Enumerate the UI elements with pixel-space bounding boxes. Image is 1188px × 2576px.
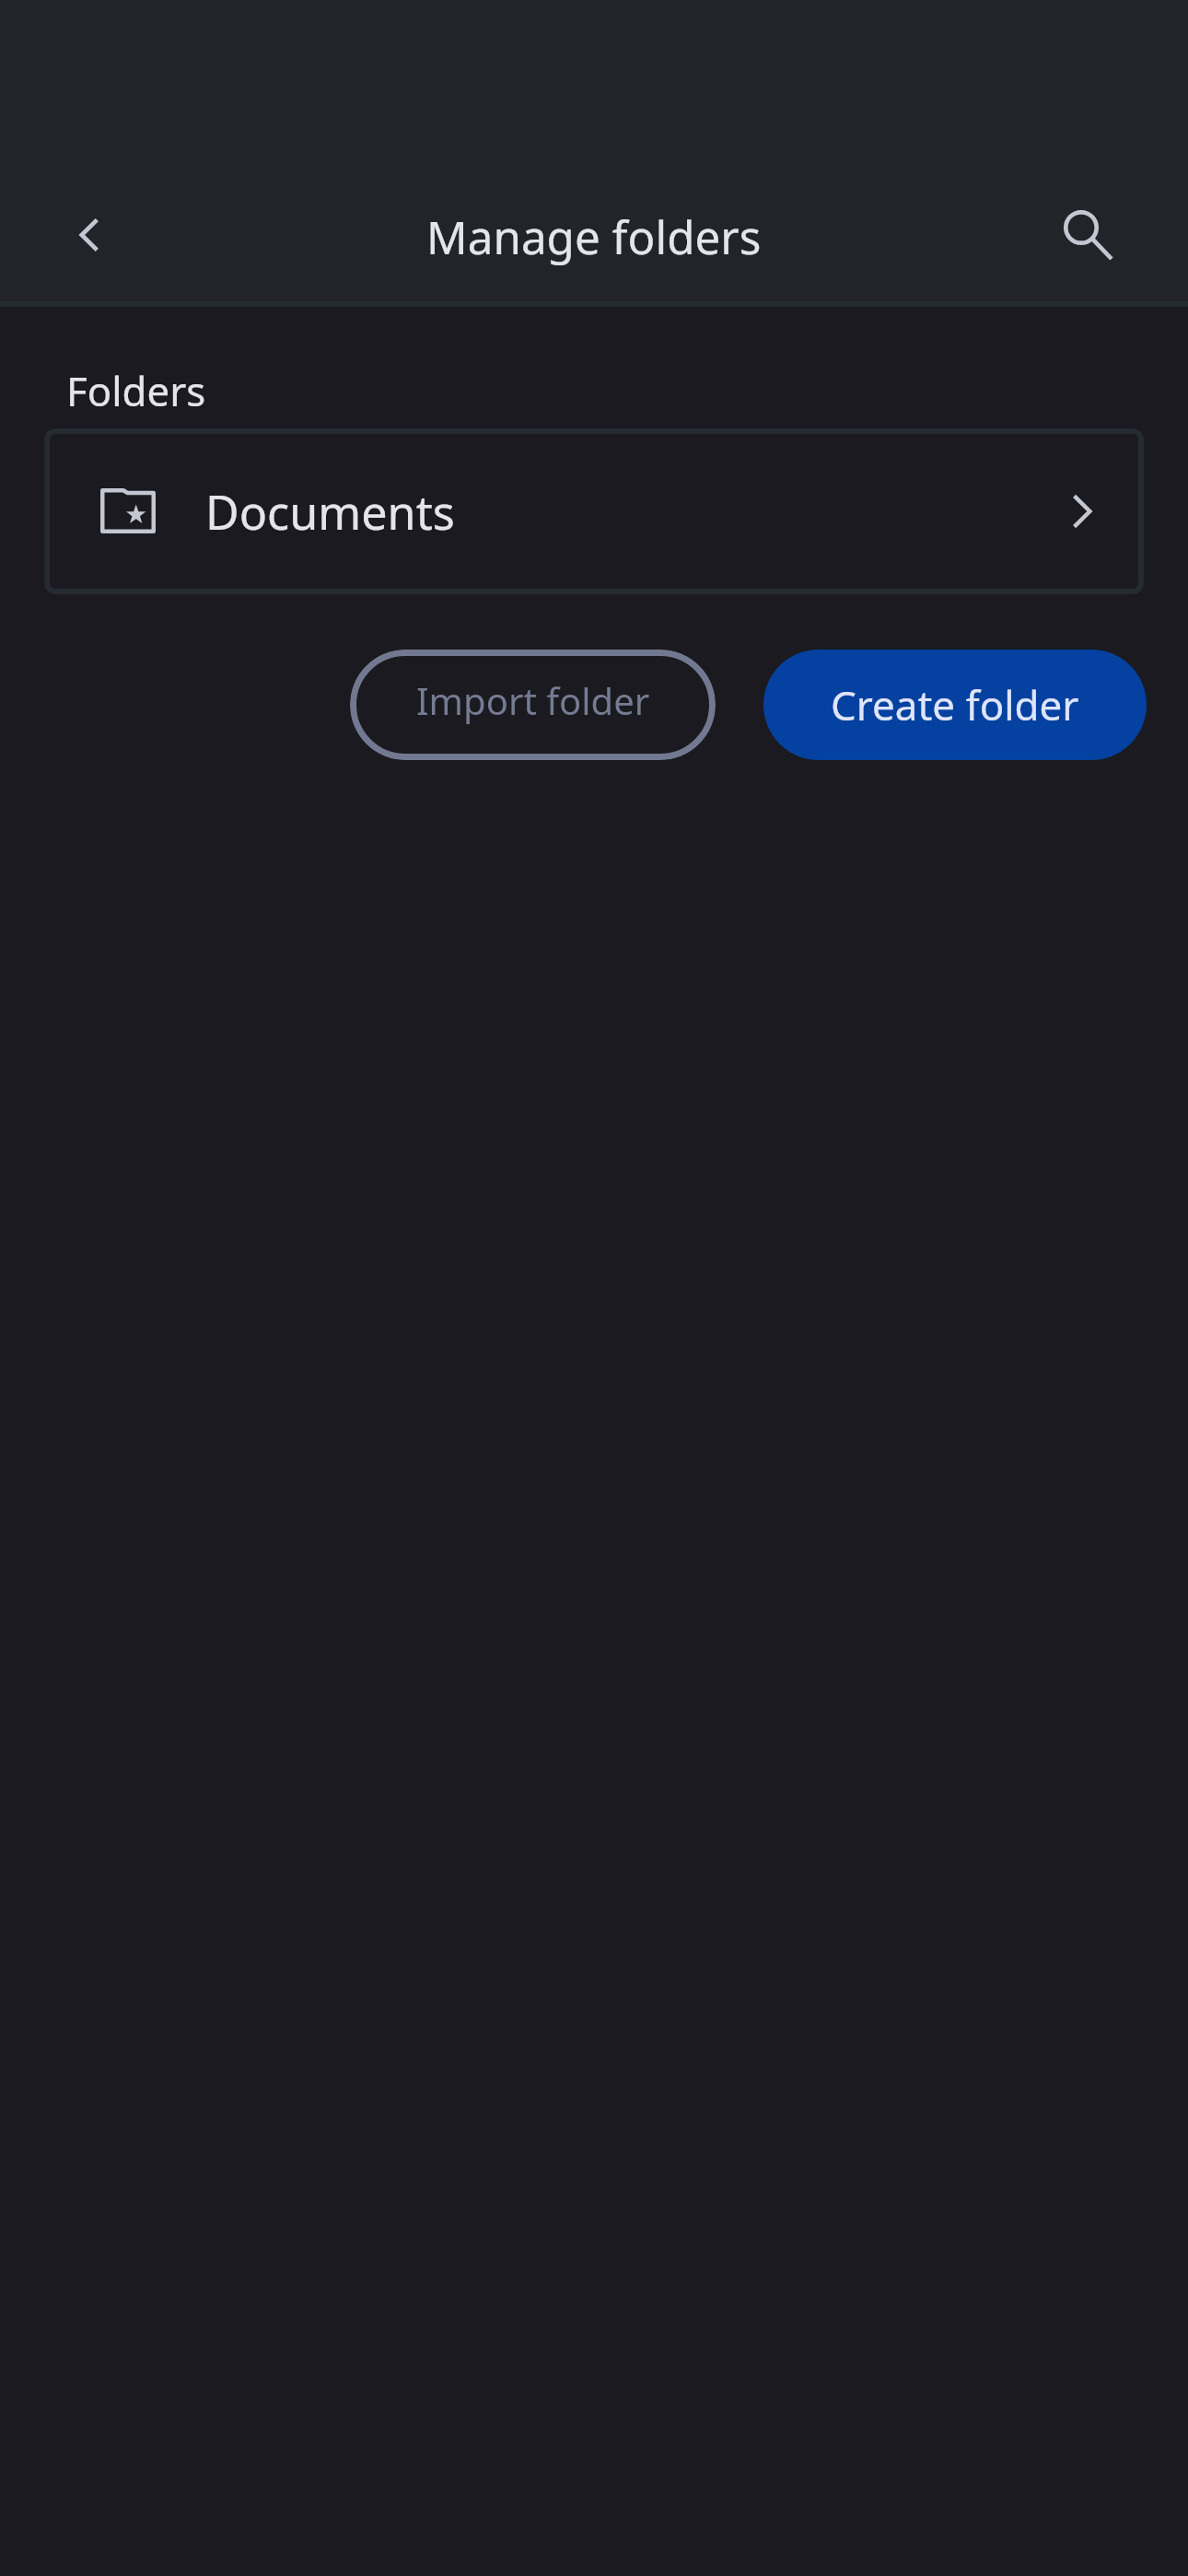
staticText: Manage folders [426,205,762,267]
staticText: Create folder [831,677,1079,732]
staticText: Import folder [416,675,650,726]
button[interactable]: Back [40,185,139,285]
staticText: Folders [66,363,206,418]
button[interactable]: Documents [44,428,1144,594]
staticText: Documents [205,480,455,543]
button[interactable]: Create folder [763,650,1147,760]
button[interactable]: Import folder [350,650,716,760]
button[interactable]: Search [1039,185,1138,285]
